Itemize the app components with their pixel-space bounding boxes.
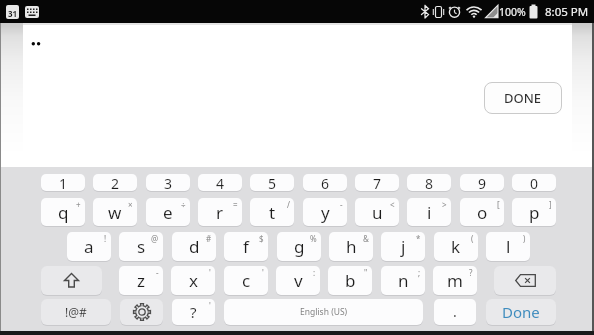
staticText: @ [151,233,159,244]
staticText: ? [190,302,197,322]
button[interactable]: English (US) [224,299,423,325]
button[interactable]: 6 [303,174,347,191]
button[interactable]: g [277,232,321,261]
button[interactable]: e [146,198,190,226]
staticText: - [156,267,159,278]
staticText: m [447,269,463,292]
button[interactable]: s [119,232,163,261]
staticText: ' [209,267,211,278]
staticText: z [137,269,145,292]
button[interactable]: m [433,266,477,295]
button[interactable]: 5 [250,174,294,191]
button[interactable]: c [224,266,268,295]
staticText: v [294,269,303,292]
staticText: % [310,233,317,244]
button[interactable]: k [434,232,478,261]
button[interactable]: q [41,198,85,226]
staticText: = [233,199,238,210]
staticText: n [398,269,409,292]
staticText: 5 [268,174,277,191]
staticText: 100% [499,5,526,19]
staticText: x [189,269,198,292]
staticText: d [189,235,200,258]
staticText: 9 [478,174,487,191]
staticText: 31 [8,8,18,19]
button[interactable]: Done [486,299,556,325]
staticText: j [401,235,406,258]
staticText: - [340,199,343,210]
staticText: # [206,233,212,244]
button[interactable]: h [329,232,373,261]
button[interactable]: 8 [407,174,451,191]
button[interactable]: p [512,198,556,226]
button[interactable]: d [172,232,216,261]
button[interactable] [494,266,556,295]
staticText: 1 [59,174,68,191]
button[interactable] [120,299,163,325]
staticText: 8 [425,174,434,191]
staticText: 7 [373,174,382,191]
button[interactable]: !@# [41,299,111,325]
button[interactable]: 1 [41,174,85,191]
staticText: q [58,201,69,224]
staticText: 3 [164,174,173,191]
button[interactable]: 2 [93,174,137,191]
button[interactable]: l [486,232,530,261]
button[interactable]: o [460,198,504,226]
staticText: " [364,267,368,278]
button[interactable]: b [328,266,372,295]
staticText: DONE [504,89,542,107]
button[interactable]: a [67,232,111,261]
staticText: t [269,201,276,224]
button[interactable]: y [303,198,347,226]
button[interactable]: . [434,299,476,325]
button[interactable]: w [93,198,137,226]
staticText: / [287,199,290,210]
staticText: + [76,199,81,210]
staticText: [ [497,199,500,210]
button[interactable]: t [250,198,294,226]
staticText: k [451,235,461,258]
button[interactable]: ? [172,299,215,325]
staticText: ( [471,233,474,244]
staticText: 8:05 PM [545,4,589,20]
staticText: h [346,235,357,258]
staticText: ' [209,300,211,311]
staticText: y [321,201,330,224]
staticText: ÷ [181,199,186,210]
staticText: 6 [321,174,330,191]
staticText: ! [104,233,107,244]
button[interactable]: u [355,198,399,226]
staticText: g [294,235,305,258]
staticText: ? [469,267,473,278]
button[interactable]: n [381,266,425,295]
button[interactable]: v [276,266,320,295]
button[interactable]: 0 [512,174,556,191]
button[interactable]: i [407,198,451,226]
staticText: 2 [111,174,120,191]
staticText: English (US) [300,306,348,318]
staticText: ; [418,267,421,278]
button[interactable]: f [224,232,268,261]
button[interactable]: 7 [355,174,399,191]
button[interactable]: r [198,198,242,226]
staticText: c [242,269,251,292]
button[interactable]: 3 [146,174,190,191]
staticText: ) [523,233,526,244]
button[interactable]: DONE [484,82,562,114]
staticText: 0 [530,174,539,191]
staticText: s [137,235,146,258]
staticText: < [390,199,395,210]
button[interactable]: 4 [198,174,242,191]
staticText: . [453,302,457,321]
button[interactable]: z [119,266,163,295]
button[interactable]: j [381,232,425,261]
staticText: l [506,235,511,258]
button[interactable]: x [171,266,215,295]
staticText: w [108,201,122,224]
staticText: p [529,201,540,224]
staticText: u [372,201,383,224]
button[interactable] [41,266,102,295]
staticText: r [216,201,224,224]
button[interactable]: 9 [460,174,504,191]
